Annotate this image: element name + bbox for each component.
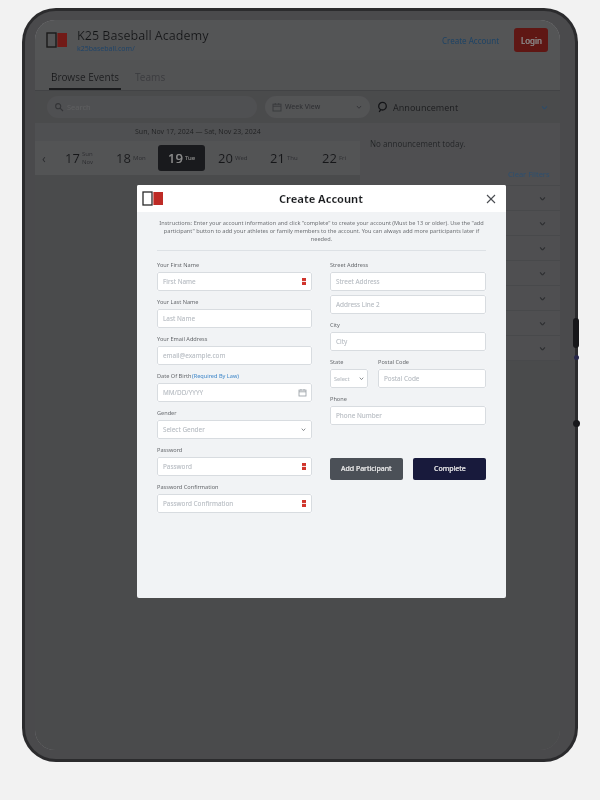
staticText: Your First Name xyxy=(157,261,200,269)
staticText: ‹ xyxy=(42,150,46,166)
button[interactable]: 21 xyxy=(260,145,307,171)
button[interactable]: Week View xyxy=(265,96,370,118)
staticText: Your Last Name xyxy=(157,298,199,306)
staticText: Create Account xyxy=(442,35,500,46)
button[interactable]: Address Line 2 xyxy=(330,295,486,314)
staticText: Password Confirmation xyxy=(163,499,234,508)
staticText: 19 xyxy=(168,149,183,167)
button[interactable]: Clear Filters xyxy=(508,169,550,179)
staticText: (Required By Law) xyxy=(192,372,239,380)
staticText: 22 xyxy=(322,149,337,167)
button[interactable]: Password Confirmation xyxy=(157,494,312,513)
staticText: Address Line 2 xyxy=(336,300,380,309)
button[interactable]: Complete xyxy=(413,458,486,480)
button[interactable]: Close xyxy=(484,192,498,206)
staticText: 21 xyxy=(270,149,285,167)
staticText: Search xyxy=(67,102,91,112)
staticText: k25baseball.com/ xyxy=(77,44,135,54)
button[interactable] xyxy=(360,336,560,360)
button[interactable] xyxy=(360,286,560,310)
staticText: Gender xyxy=(157,409,177,417)
staticText: Fri xyxy=(339,154,347,162)
staticText: Select Gender xyxy=(163,425,205,434)
button[interactable]: Add Participant xyxy=(330,458,403,480)
staticText: Teams xyxy=(135,70,166,84)
button[interactable]: First Name xyxy=(157,272,312,291)
button[interactable] xyxy=(360,261,560,285)
staticText: Announcement xyxy=(393,101,459,113)
staticText: Sun, Nov 17, 2024 — Sat, Nov 23, 2024 xyxy=(135,127,261,137)
staticText: State xyxy=(330,358,344,366)
button[interactable]: Teams xyxy=(135,70,166,90)
staticText: Clear Filters xyxy=(508,169,550,179)
staticText: No announcement today. xyxy=(370,138,466,149)
button[interactable]: Select xyxy=(330,369,368,388)
staticText: Browse Events xyxy=(51,70,120,84)
staticText: Select xyxy=(334,375,350,383)
staticText: Phone Number xyxy=(336,411,382,420)
staticText: City xyxy=(330,321,340,329)
staticText: Login xyxy=(521,35,542,46)
button[interactable]: 18 xyxy=(107,145,154,171)
staticText: Password xyxy=(157,446,183,454)
button[interactable]: 20 xyxy=(209,145,256,171)
button[interactable]: email@example.com xyxy=(157,346,312,365)
staticText: Week View xyxy=(285,102,321,112)
staticText: email@example.com xyxy=(163,351,226,360)
button[interactable] xyxy=(360,186,560,210)
staticText: Instructions: Enter your account informa… xyxy=(157,219,486,243)
button[interactable]: Login xyxy=(514,28,548,52)
staticText: Tue xyxy=(185,154,196,162)
staticText: Password Confirmation xyxy=(157,483,219,491)
button[interactable]: 19 xyxy=(158,145,205,171)
staticText: K25 Baseball Academy xyxy=(77,27,209,44)
staticText: Password xyxy=(163,462,192,471)
button[interactable]: City xyxy=(330,332,486,351)
button[interactable]: Postal Code xyxy=(378,369,486,388)
button[interactable]: Phone Number xyxy=(330,406,486,425)
button[interactable]: Last Name xyxy=(157,309,312,328)
button[interactable]: 22 xyxy=(311,145,358,171)
staticText: Street Address xyxy=(330,261,369,269)
staticText: Postal Code xyxy=(384,374,420,383)
button[interactable]: Announcement xyxy=(378,101,548,113)
staticText: 17 xyxy=(65,149,80,167)
staticText: Wed xyxy=(235,154,248,162)
button[interactable] xyxy=(360,236,560,260)
staticText: First Name xyxy=(163,277,196,286)
staticText: Date Of Birth xyxy=(157,372,192,380)
button[interactable] xyxy=(360,311,560,335)
staticText: Create Account xyxy=(279,191,364,206)
staticText: Street Address xyxy=(336,277,380,286)
button[interactable] xyxy=(360,211,560,235)
staticText: Complete xyxy=(434,464,466,474)
staticText: Mon xyxy=(133,154,146,162)
staticText: Phone xyxy=(330,395,347,403)
button[interactable]: ‹ xyxy=(35,150,53,166)
staticText: 20 xyxy=(218,149,233,167)
button[interactable]: Browse Events xyxy=(49,70,121,90)
staticText: Sun xyxy=(82,150,93,158)
staticText: Your Email Address xyxy=(157,335,208,343)
staticText: Last Name xyxy=(163,314,195,323)
button[interactable]: MM/DD/YYYY xyxy=(157,383,312,402)
staticText: City xyxy=(336,337,348,346)
staticText: Postal Code xyxy=(378,358,410,366)
button[interactable]: 17 xyxy=(55,145,103,171)
button[interactable]: Create Account xyxy=(436,31,506,50)
staticText: MM/DD/YYYY xyxy=(163,388,204,397)
staticText: 18 xyxy=(116,149,131,167)
button[interactable]: Password xyxy=(157,457,312,476)
button[interactable]: Street Address xyxy=(330,272,486,291)
staticText: Nov xyxy=(82,158,94,166)
staticText: Thu xyxy=(287,154,298,162)
staticText: Add Participant xyxy=(341,464,392,474)
button[interactable]: Select Gender xyxy=(157,420,312,439)
